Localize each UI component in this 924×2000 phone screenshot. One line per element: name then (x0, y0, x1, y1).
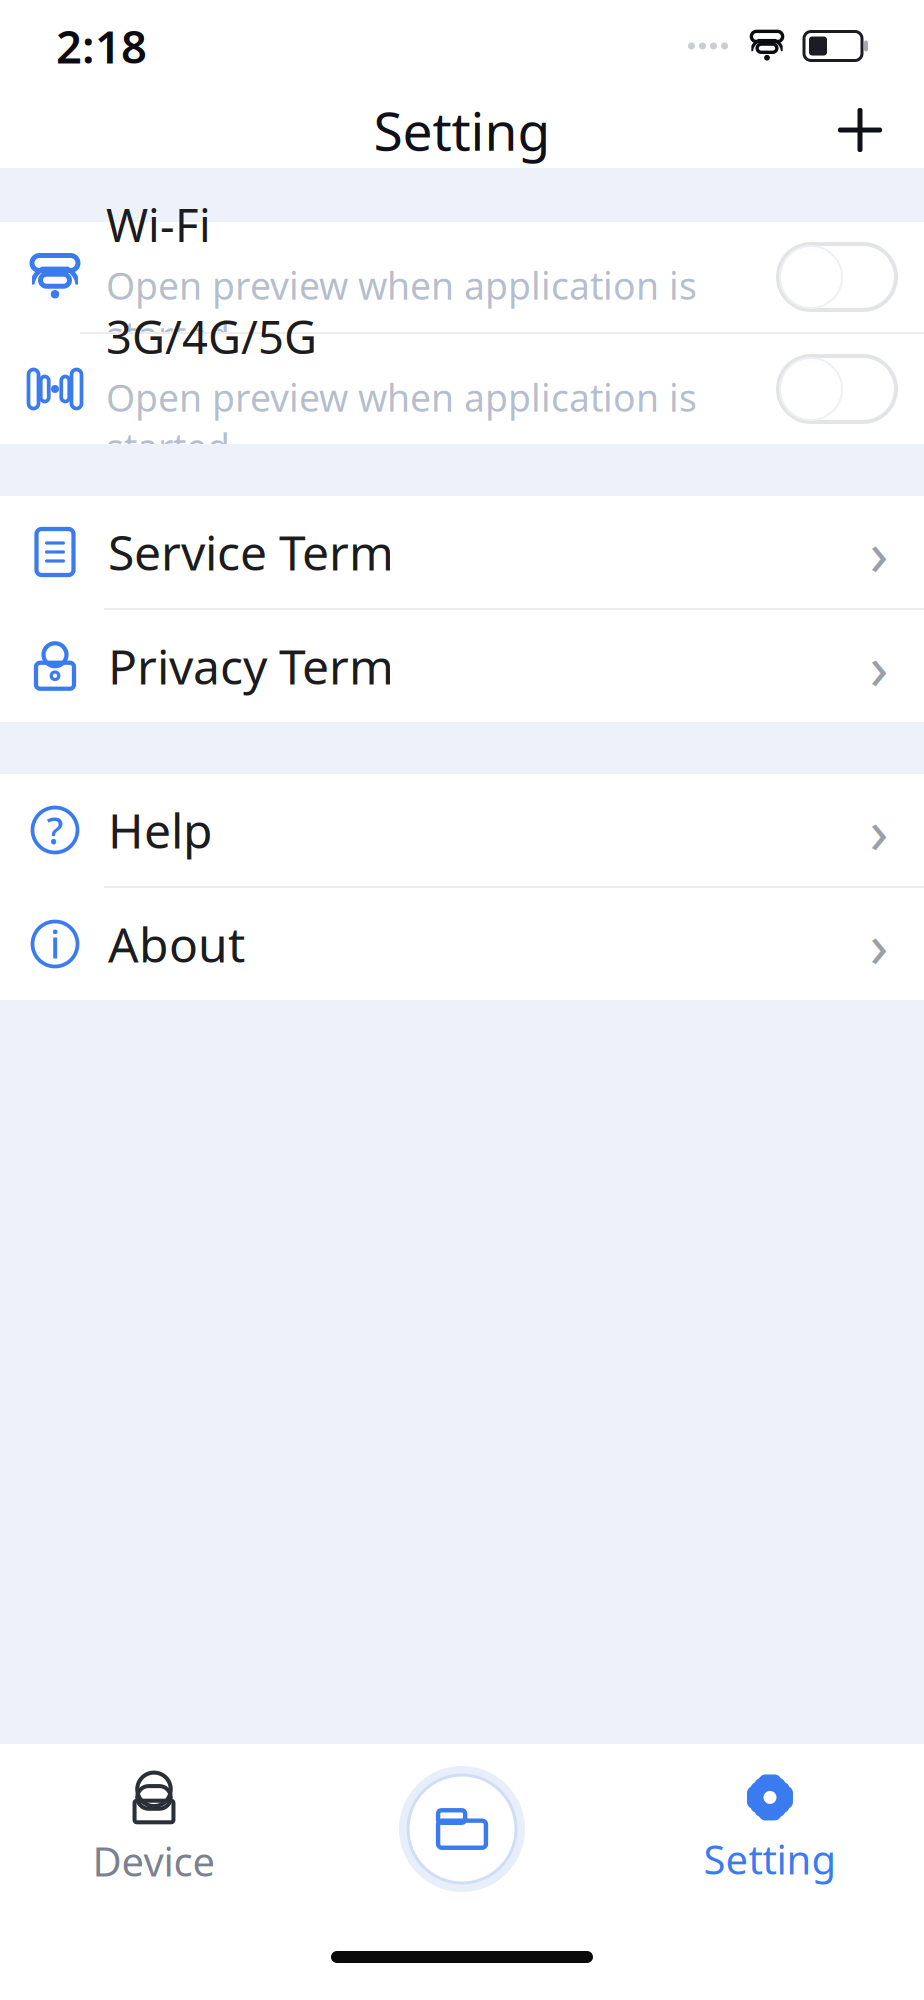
staticText: Setting (373, 95, 550, 165)
staticText: Help (108, 798, 213, 862)
staticText: Open preview when application is started… (106, 260, 697, 360)
staticText: › (869, 789, 888, 871)
staticText: Wi-Fi (106, 194, 211, 254)
staticText: 2:18 (56, 16, 147, 76)
staticText: Setting (703, 1832, 836, 1885)
staticText: › (869, 511, 888, 593)
button[interactable]: 3G/4G/5G (0, 334, 924, 444)
button[interactable]: Service Term (0, 496, 924, 608)
button[interactable]: ? (0, 774, 924, 886)
staticText: 3G/4G/5G (106, 306, 317, 366)
staticText: About (108, 912, 245, 976)
staticText: Service Term (108, 520, 394, 584)
button[interactable]: Privacy Term (0, 610, 924, 722)
button[interactable]: Files (308, 1744, 616, 1914)
staticText: Open preview when application is started… (106, 372, 697, 472)
button[interactable]: i (0, 888, 924, 1000)
staticText: i (50, 919, 60, 969)
staticText: ? (46, 805, 63, 855)
button[interactable]: Add (830, 100, 924, 160)
staticText: Device (92, 1834, 215, 1887)
staticText: › (869, 903, 888, 985)
staticText: Privacy Term (108, 634, 394, 698)
button[interactable]: Device (0, 1744, 308, 1914)
button[interactable]: Wi-Fi (0, 222, 924, 332)
staticText: › (869, 625, 888, 707)
button[interactable]: Setting (616, 1744, 924, 1914)
